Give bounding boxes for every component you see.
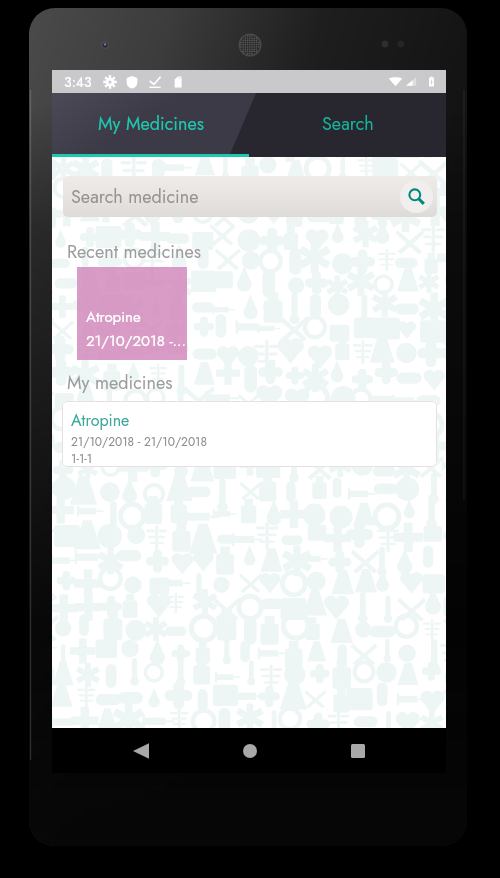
button[interactable]: Home [232, 733, 267, 768]
button[interactable]: Back [123, 733, 158, 768]
staticText: Atropine [71, 409, 130, 432]
staticText: 3:43 [64, 72, 92, 92]
button[interactable]: My Medicines [52, 93, 249, 154]
staticText: Search [322, 111, 374, 137]
staticText: Recent medicines [67, 239, 201, 265]
button[interactable]: Atropine [77, 267, 187, 360]
button[interactable]: Atropine [62, 401, 437, 467]
staticText: Search medicine [71, 184, 199, 210]
staticText: My Medicines [98, 111, 204, 137]
staticText: 21/10/2018 -... [86, 330, 187, 352]
staticText: 1-1-1 [71, 450, 93, 467]
staticText: Atropine [86, 306, 141, 328]
staticText: 21/10/2018 - 21/10/2018 [71, 433, 208, 450]
button[interactable]: Search medicine [63, 176, 437, 217]
button[interactable]: Search [400, 180, 433, 213]
button[interactable]: Recents [340, 733, 375, 768]
staticText: My medicines [67, 370, 173, 396]
button[interactable]: Search [249, 93, 446, 154]
